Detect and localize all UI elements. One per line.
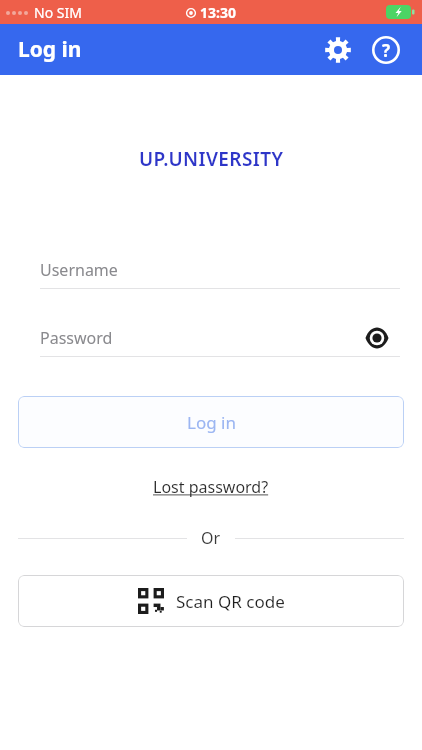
- button[interactable]: Help: [364, 28, 408, 72]
- staticText: Username: [40, 259, 118, 281]
- button[interactable]: Password: [18, 320, 404, 357]
- button[interactable]: Username: [18, 252, 404, 289]
- staticText: No SIM: [34, 3, 82, 22]
- staticText: 13:30: [200, 3, 236, 22]
- button[interactable]: Settings: [316, 28, 360, 72]
- button[interactable]: Lost password?: [145, 472, 277, 502]
- staticText: ?: [382, 39, 391, 62]
- staticText: Log in: [187, 411, 236, 434]
- button[interactable]: Log in: [18, 396, 404, 448]
- staticText: UP.UNIVERSITY: [139, 146, 284, 172]
- staticText: Password: [40, 327, 113, 349]
- staticText: Lost password?: [153, 476, 269, 498]
- staticText: Scan QR code: [176, 590, 285, 613]
- staticText: Log in: [18, 35, 82, 64]
- button[interactable]: Scan QR code: [18, 575, 404, 627]
- staticText: Or: [201, 527, 221, 549]
- button[interactable]: Show password: [360, 321, 394, 355]
